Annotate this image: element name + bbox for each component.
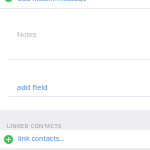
staticText: link contacts… [18,134,65,144]
staticText: add instant message [18,0,87,2]
button[interactable]: add field [0,60,150,96]
staticText: LINKED CONTACTS [7,122,62,129]
staticText: Notes [17,30,37,40]
staticText: add field [17,82,48,92]
button[interactable]: add instant message [0,0,150,8]
button[interactable]: Link contacts [0,130,150,148]
button[interactable]: Notes [0,9,150,59]
other: Link contacts [4,135,13,144]
